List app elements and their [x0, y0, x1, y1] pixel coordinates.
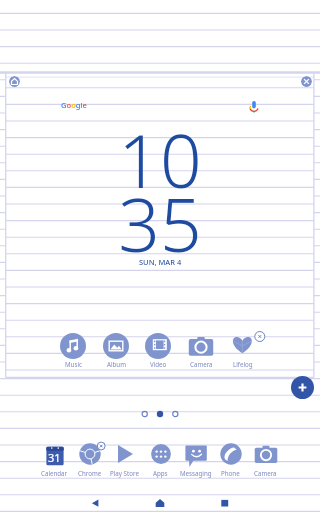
button[interactable]: Calendar	[37, 441, 72, 479]
button[interactable]: Messaging	[178, 441, 213, 479]
staticText: Camera	[190, 360, 213, 368]
staticText: 35	[118, 174, 202, 273]
button[interactable]: Camera	[248, 441, 283, 479]
button[interactable]: Recents	[214, 494, 236, 512]
staticText: Video	[150, 360, 167, 368]
staticText: Google	[61, 100, 87, 110]
staticText: Messaging	[180, 469, 212, 477]
staticText: Calendar	[41, 469, 68, 477]
button[interactable]: Remove widget	[301, 76, 312, 87]
staticText: Phone	[221, 469, 240, 477]
button[interactable]: Back	[84, 494, 106, 512]
button[interactable]: Phone	[213, 441, 248, 479]
staticText: Chrome	[78, 469, 102, 477]
staticText: 31	[48, 450, 61, 465]
button[interactable]: Home page	[9, 76, 20, 87]
staticText: Lifelog	[233, 360, 253, 368]
button[interactable]: Apps	[143, 441, 178, 479]
button[interactable]: Album	[95, 331, 137, 371]
button[interactable]: Camera	[180, 331, 222, 371]
button[interactable]: Google	[6, 95, 314, 120]
button[interactable]: Play Store	[107, 441, 142, 479]
button[interactable]: Add	[291, 376, 314, 399]
button[interactable]: Voice search	[246, 99, 262, 115]
button[interactable]: Video	[137, 331, 179, 371]
button[interactable]: Home	[149, 494, 171, 512]
button[interactable]: Lifelog	[222, 331, 264, 371]
button[interactable]: Music	[52, 331, 94, 371]
staticText: Play Store	[110, 469, 139, 477]
staticText: Apps	[153, 469, 168, 477]
staticText: 10	[118, 110, 202, 209]
button[interactable]: Chrome	[72, 441, 107, 479]
staticText: Camera	[254, 469, 277, 477]
staticText: SUN, MAR 4	[139, 257, 182, 267]
staticText: Album	[107, 360, 126, 368]
staticText: Music	[65, 360, 82, 368]
